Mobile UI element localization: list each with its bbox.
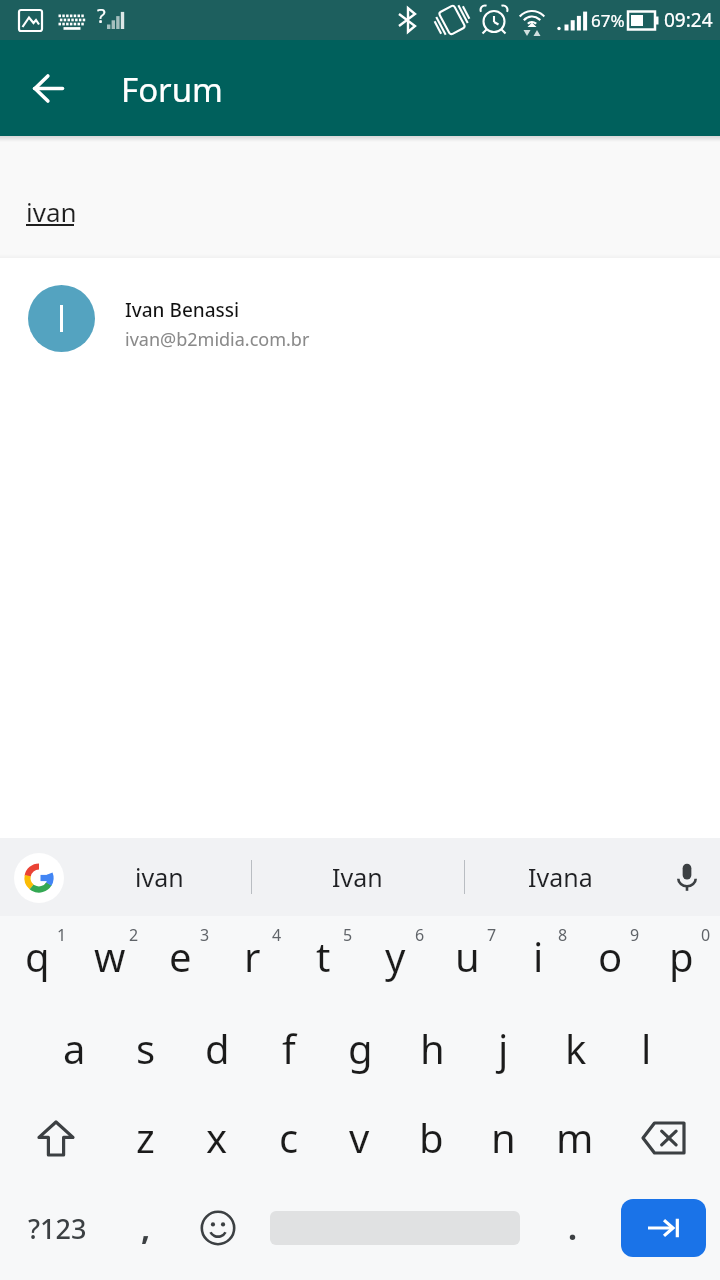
staticText: 4 [272, 924, 282, 946]
staticText: v [349, 1110, 370, 1164]
staticText: d [205, 1021, 230, 1075]
staticText: Ivan [332, 860, 383, 894]
button[interactable]: Emoji [182, 1192, 254, 1264]
staticText: 7 [487, 924, 497, 946]
staticText: x [206, 1110, 228, 1164]
staticText: o [598, 929, 623, 983]
staticText: e [169, 929, 192, 983]
button[interactable]: . [536, 1192, 608, 1264]
staticText: i [533, 929, 544, 983]
button[interactable]: c [253, 1100, 324, 1174]
staticText: 9 [630, 924, 640, 946]
staticText: ivan@b2midia.com.br [125, 327, 310, 352]
staticText: h [420, 1021, 445, 1075]
button[interactable]: m [539, 1100, 610, 1174]
staticText: a [63, 1021, 86, 1075]
staticText: 67% [591, 9, 625, 32]
staticText: 3 [200, 924, 210, 946]
button[interactable]: f [253, 1011, 324, 1085]
staticText: w [94, 929, 126, 983]
button[interactable]: Backspace [613, 1101, 714, 1175]
button[interactable]: z [110, 1100, 181, 1174]
button[interactable]: u [432, 916, 503, 990]
button[interactable]: Space [254, 1192, 536, 1264]
button[interactable]: o [575, 916, 646, 990]
staticText: g [348, 1021, 373, 1075]
button[interactable]: t [288, 916, 359, 990]
staticText: b [419, 1110, 444, 1164]
button[interactable]: y [360, 916, 431, 990]
staticText: 1 [57, 924, 67, 946]
button[interactable]: x [181, 1100, 252, 1174]
staticText: 09:24 [664, 7, 713, 33]
button[interactable]: Back [16, 56, 80, 120]
staticText: f [282, 1021, 296, 1075]
button[interactable]: ivan [26, 194, 86, 240]
staticText: 6 [415, 924, 425, 946]
button[interactable]: b [396, 1100, 467, 1174]
staticText: p [669, 929, 694, 983]
staticText: Ivan Benassi [125, 297, 240, 323]
button[interactable]: r [217, 916, 288, 990]
button[interactable]: h [397, 1011, 468, 1085]
staticText: c [279, 1110, 299, 1164]
button[interactable]: Shift [5, 1101, 106, 1175]
staticText: m [556, 1110, 594, 1164]
button[interactable]: Ivan [260, 838, 455, 916]
button[interactable]: p [646, 916, 717, 990]
button[interactable]: Ivan Benassi [0, 258, 720, 382]
staticText: , [141, 1206, 151, 1250]
staticText: . [568, 1206, 577, 1250]
staticText: 8 [558, 924, 568, 946]
button[interactable]: ivan [97, 838, 221, 916]
button[interactable]: Voice input [654, 838, 720, 916]
button[interactable]: d [182, 1011, 253, 1085]
staticText: s [136, 1021, 156, 1075]
staticText: 0 [701, 924, 711, 946]
staticText: j [498, 1021, 509, 1075]
button[interactable]: n [468, 1100, 539, 1174]
staticText: ivan [135, 860, 184, 894]
button[interactable]: s [110, 1011, 181, 1085]
button[interactable]: a [39, 1011, 110, 1085]
button[interactable]: w [74, 916, 145, 990]
button[interactable]: i [503, 916, 574, 990]
button[interactable]: v [324, 1100, 395, 1174]
staticText: k [565, 1021, 587, 1075]
staticText: z [136, 1110, 155, 1164]
staticText: Ivana [528, 860, 593, 894]
button[interactable]: Ivana [470, 838, 650, 916]
button[interactable]: k [540, 1011, 611, 1085]
staticText: r [244, 929, 261, 983]
button[interactable]: q [2, 916, 73, 990]
button[interactable]: g [325, 1011, 396, 1085]
staticText: Forum [121, 67, 223, 112]
button[interactable]: l [611, 1011, 682, 1085]
button[interactable]: Google Search [14, 853, 64, 903]
staticText: t [316, 929, 331, 983]
staticText: n [491, 1110, 516, 1164]
button[interactable]: j [468, 1011, 539, 1085]
staticText: 2 [129, 924, 139, 946]
button[interactable]: , [110, 1192, 182, 1264]
staticText: ?123 [28, 1210, 87, 1247]
staticText: q [25, 929, 50, 983]
staticText: l [641, 1021, 652, 1075]
staticText: 5 [343, 924, 353, 946]
button[interactable]: ?123 [4, 1192, 110, 1264]
staticText: ? [97, 2, 106, 29]
staticText: ivan [26, 194, 77, 229]
button[interactable]: e [145, 916, 216, 990]
staticText: u [455, 929, 480, 983]
button[interactable]: Enter [606, 1192, 720, 1264]
staticText: y [385, 929, 406, 983]
